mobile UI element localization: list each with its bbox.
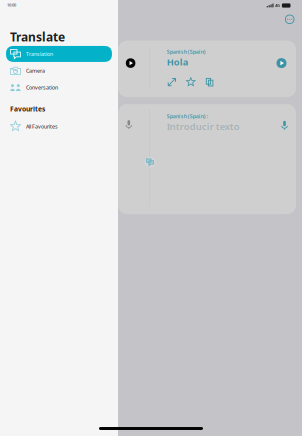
button[interactable]: Play translation [271, 53, 291, 73]
staticText: Camera [26, 67, 45, 74]
staticText: Translation [26, 50, 53, 57]
staticText: Introducir texto [167, 120, 240, 133]
staticText: Spanish (Spain) : [167, 113, 208, 120]
button[interactable]: Copy [205, 77, 215, 87]
staticText: Favourites [10, 104, 45, 113]
button[interactable]: More options [284, 14, 295, 25]
button[interactable]: Translation [6, 46, 112, 62]
button[interactable]: Expand [167, 77, 177, 87]
staticText: Hola [167, 56, 189, 68]
staticText: Translate [10, 29, 65, 45]
button[interactable]: Translate [143, 156, 156, 169]
staticText: 4G [275, 3, 280, 8]
button[interactable]: Conversation [6, 79, 112, 95]
staticText: Conversation [26, 84, 58, 91]
button[interactable]: Voice input [274, 115, 294, 135]
button[interactable]: Camera [6, 63, 112, 79]
button[interactable]: Favourite [186, 77, 196, 87]
staticText: 10:00 [7, 2, 16, 8]
staticText: Spanish (Spain) [167, 48, 206, 55]
staticText: All Favourites [26, 123, 58, 130]
button[interactable]: Dictate [119, 114, 139, 134]
button[interactable]: Play original [121, 53, 141, 73]
button[interactable]: All Favourites [6, 118, 112, 134]
